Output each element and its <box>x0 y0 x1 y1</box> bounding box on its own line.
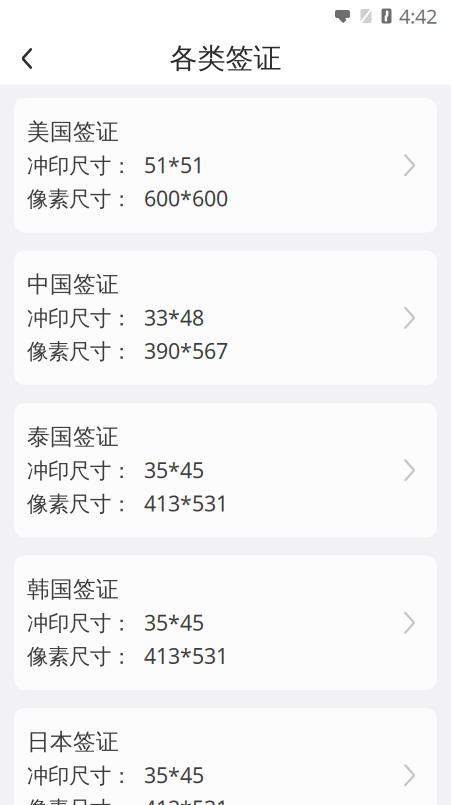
staticText: 冲印尺寸： 35*45 <box>27 456 204 484</box>
staticText: 冲印尺寸： 35*45 <box>27 608 204 637</box>
staticText: 4:42 <box>399 3 437 29</box>
staticText: 冲印尺寸： 33*48 <box>27 303 204 332</box>
staticText: 像素尺寸： 413*531 <box>27 489 228 517</box>
staticText: 各类签证 <box>169 41 281 76</box>
button[interactable]: 美国签证 <box>14 98 437 232</box>
staticText: 中国签证 <box>27 270 119 298</box>
staticText: 日本签证 <box>27 728 119 756</box>
button[interactable]: 韩国签证 <box>14 555 437 690</box>
button[interactable]: 返回 <box>0 32 54 84</box>
staticText: 像素尺寸： 413*531 <box>27 794 228 805</box>
staticText: 像素尺寸： 413*531 <box>27 642 228 670</box>
staticText: 像素尺寸： 390*567 <box>27 337 228 365</box>
staticText: 泰国签证 <box>27 423 119 451</box>
staticText: 美国签证 <box>27 118 119 146</box>
staticText: 冲印尺寸： 51*51 <box>27 151 204 179</box>
staticText: 韩国签证 <box>27 575 119 603</box>
staticText: 冲印尺寸： 35*45 <box>27 761 204 789</box>
staticText: 像素尺寸： 600*600 <box>27 184 228 212</box>
button[interactable]: 日本签证 <box>14 708 437 805</box>
button[interactable]: 泰国签证 <box>14 403 437 537</box>
button[interactable]: 中国签证 <box>14 250 437 385</box>
